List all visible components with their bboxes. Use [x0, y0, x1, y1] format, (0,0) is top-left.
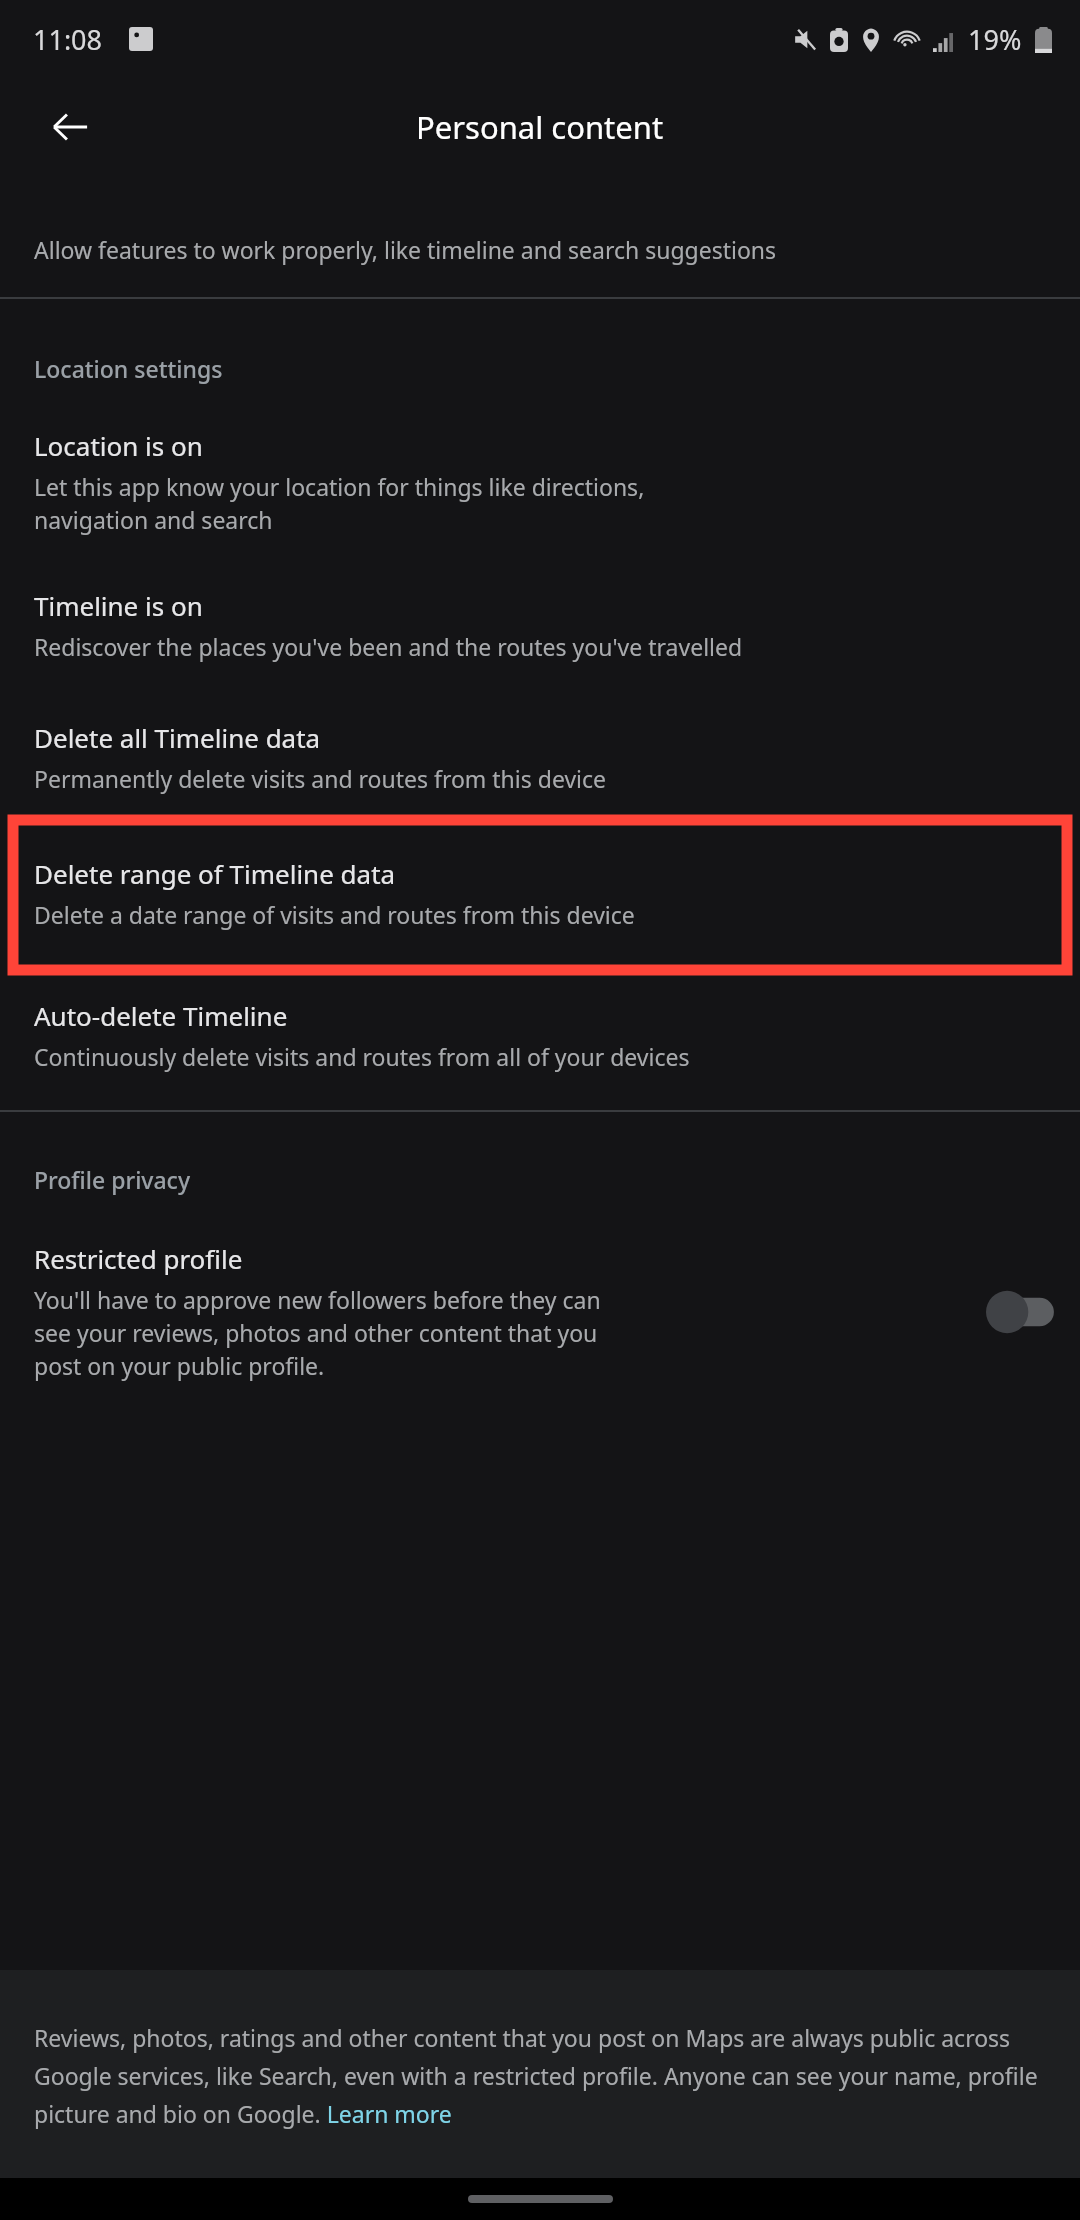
button[interactable]: Restricted profile	[0, 1217, 1080, 1412]
button[interactable]: Back	[42, 99, 98, 155]
button[interactable]: Restricted profile toggle	[986, 1289, 1056, 1335]
button[interactable]: Delete all Timeline data	[0, 694, 1080, 814]
staticText: Delete range of Timeline data	[34, 856, 396, 891]
staticText: Location settings	[34, 353, 223, 384]
staticText: Let this app know your location for thin…	[34, 471, 645, 536]
button[interactable]: Location is on	[0, 404, 1080, 562]
staticText: Allow features to work properly, like ti…	[34, 234, 777, 265]
staticText: Profile privacy	[34, 1164, 191, 1195]
staticText: Rediscover the places you've been and th…	[34, 631, 743, 662]
button[interactable]: Delete range of Timeline data	[13, 820, 1067, 970]
staticText: Continuously delete visits and routes fr…	[34, 1041, 690, 1072]
staticText: Timeline is on	[34, 588, 203, 623]
button[interactable]: Timeline is on	[0, 562, 1080, 694]
staticText: Permanently delete visits and routes fro…	[34, 763, 607, 794]
staticText: Delete all Timeline data	[34, 720, 321, 755]
staticText: Personal content	[416, 106, 664, 148]
staticText: Restricted profile	[34, 1241, 243, 1276]
button[interactable]: Auto-delete Timeline	[0, 976, 1080, 1110]
staticText: 19%	[968, 21, 1022, 58]
staticText: Auto-delete Timeline	[34, 998, 288, 1033]
staticText: 11:08	[33, 21, 103, 58]
staticText: Reviews, photos, ratings and other conte…	[34, 2022, 1038, 2130]
staticText: Location is on	[34, 428, 203, 463]
staticText: You'll have to approve new followers bef…	[34, 1284, 601, 1382]
staticText: Delete a date range of visits and routes…	[34, 899, 635, 930]
